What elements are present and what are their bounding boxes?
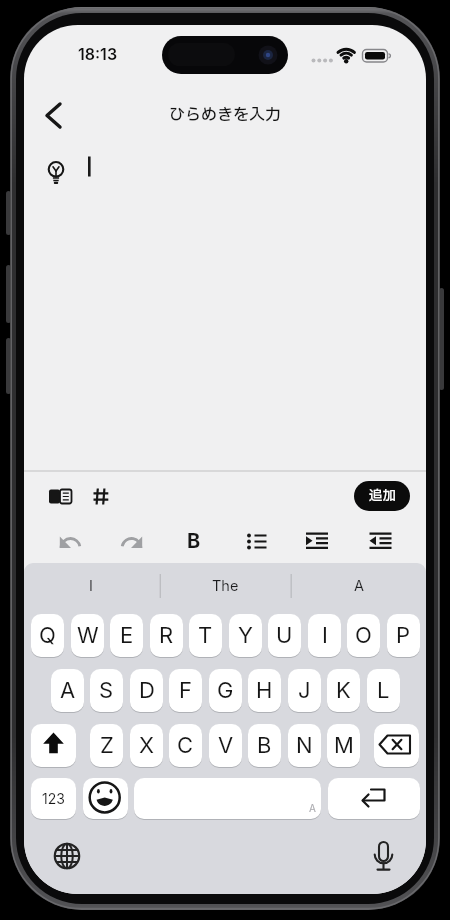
staticText: 18:13 [78, 44, 118, 63]
staticText: E [120, 622, 134, 649]
button[interactable]: A [51, 669, 84, 712]
staticText: D [139, 677, 155, 704]
staticText: P [396, 622, 411, 649]
staticText: The [212, 577, 239, 595]
button[interactable]: X [130, 724, 163, 767]
staticText: X [139, 732, 155, 759]
staticText: N [296, 732, 313, 759]
button[interactable] [304, 529, 332, 555]
staticText: 追加 [369, 486, 396, 506]
button[interactable]: S [90, 669, 123, 712]
staticText: K [336, 677, 351, 704]
staticText: Y [238, 622, 253, 649]
button[interactable] [31, 724, 76, 767]
button[interactable] [244, 529, 272, 555]
staticText: H [256, 677, 273, 704]
button[interactable]: F [169, 669, 202, 712]
button[interactable]: O [347, 614, 380, 657]
button[interactable]: A [292, 564, 426, 608]
staticText: O [355, 622, 372, 649]
button[interactable]: P [387, 614, 420, 657]
button[interactable]: I [308, 614, 341, 657]
button[interactable]: B [248, 724, 281, 767]
staticText: B [257, 732, 272, 759]
button[interactable] [328, 778, 420, 819]
button[interactable] [52, 841, 82, 871]
button[interactable] [42, 482, 68, 508]
staticText: M [334, 732, 354, 759]
button[interactable]: 123 [31, 778, 76, 819]
staticText: I [322, 622, 328, 649]
staticText: A [354, 577, 365, 595]
button[interactable]: Y [229, 614, 262, 657]
button[interactable]: J [288, 669, 321, 712]
staticText: W [77, 622, 99, 649]
button[interactable] [367, 529, 395, 555]
staticText: F [179, 677, 192, 704]
button[interactable] [56, 529, 84, 555]
button[interactable]: D [130, 669, 163, 712]
staticText: U [276, 622, 293, 649]
button[interactable]: G [209, 669, 242, 712]
button[interactable]: N [288, 724, 321, 767]
staticText: G [217, 677, 234, 704]
button[interactable]: V [209, 724, 242, 767]
button[interactable]: Q [31, 614, 64, 657]
staticText: C [177, 732, 194, 759]
staticText: R [159, 622, 174, 649]
button[interactable]: H [248, 669, 281, 712]
staticText: A [60, 677, 76, 704]
staticText: ひらめきを入力 [169, 103, 282, 127]
staticText: L [377, 677, 390, 704]
button[interactable]: W [71, 614, 104, 657]
button[interactable] [87, 482, 115, 510]
button[interactable]: 追加 [354, 481, 410, 511]
button[interactable]: Z [90, 724, 123, 767]
staticText: I [89, 577, 93, 595]
button[interactable]: K [327, 669, 360, 712]
button[interactable] [116, 529, 144, 555]
button[interactable]: I [24, 564, 158, 608]
staticText: S [99, 677, 114, 704]
button[interactable]: E [110, 614, 143, 657]
button[interactable] [134, 778, 321, 819]
button[interactable]: R [150, 614, 183, 657]
button[interactable] [38, 97, 74, 133]
button[interactable]: U [268, 614, 301, 657]
button[interactable]: The [158, 564, 292, 608]
button[interactable] [83, 778, 128, 819]
staticText: A [309, 802, 316, 814]
button[interactable] [374, 724, 419, 767]
button[interactable]: T [189, 614, 222, 657]
staticText: Z [100, 732, 114, 759]
button[interactable]: C [169, 724, 202, 767]
staticText: V [218, 732, 234, 759]
staticText: J [298, 677, 311, 704]
button[interactable]: M [327, 724, 360, 767]
staticText: 123 [42, 790, 65, 807]
staticText: T [198, 622, 213, 649]
button[interactable] [369, 840, 399, 870]
staticText: B [187, 529, 201, 553]
button[interactable]: L [367, 669, 400, 712]
staticText: Q [39, 622, 56, 649]
button[interactable]: B [179, 527, 209, 555]
